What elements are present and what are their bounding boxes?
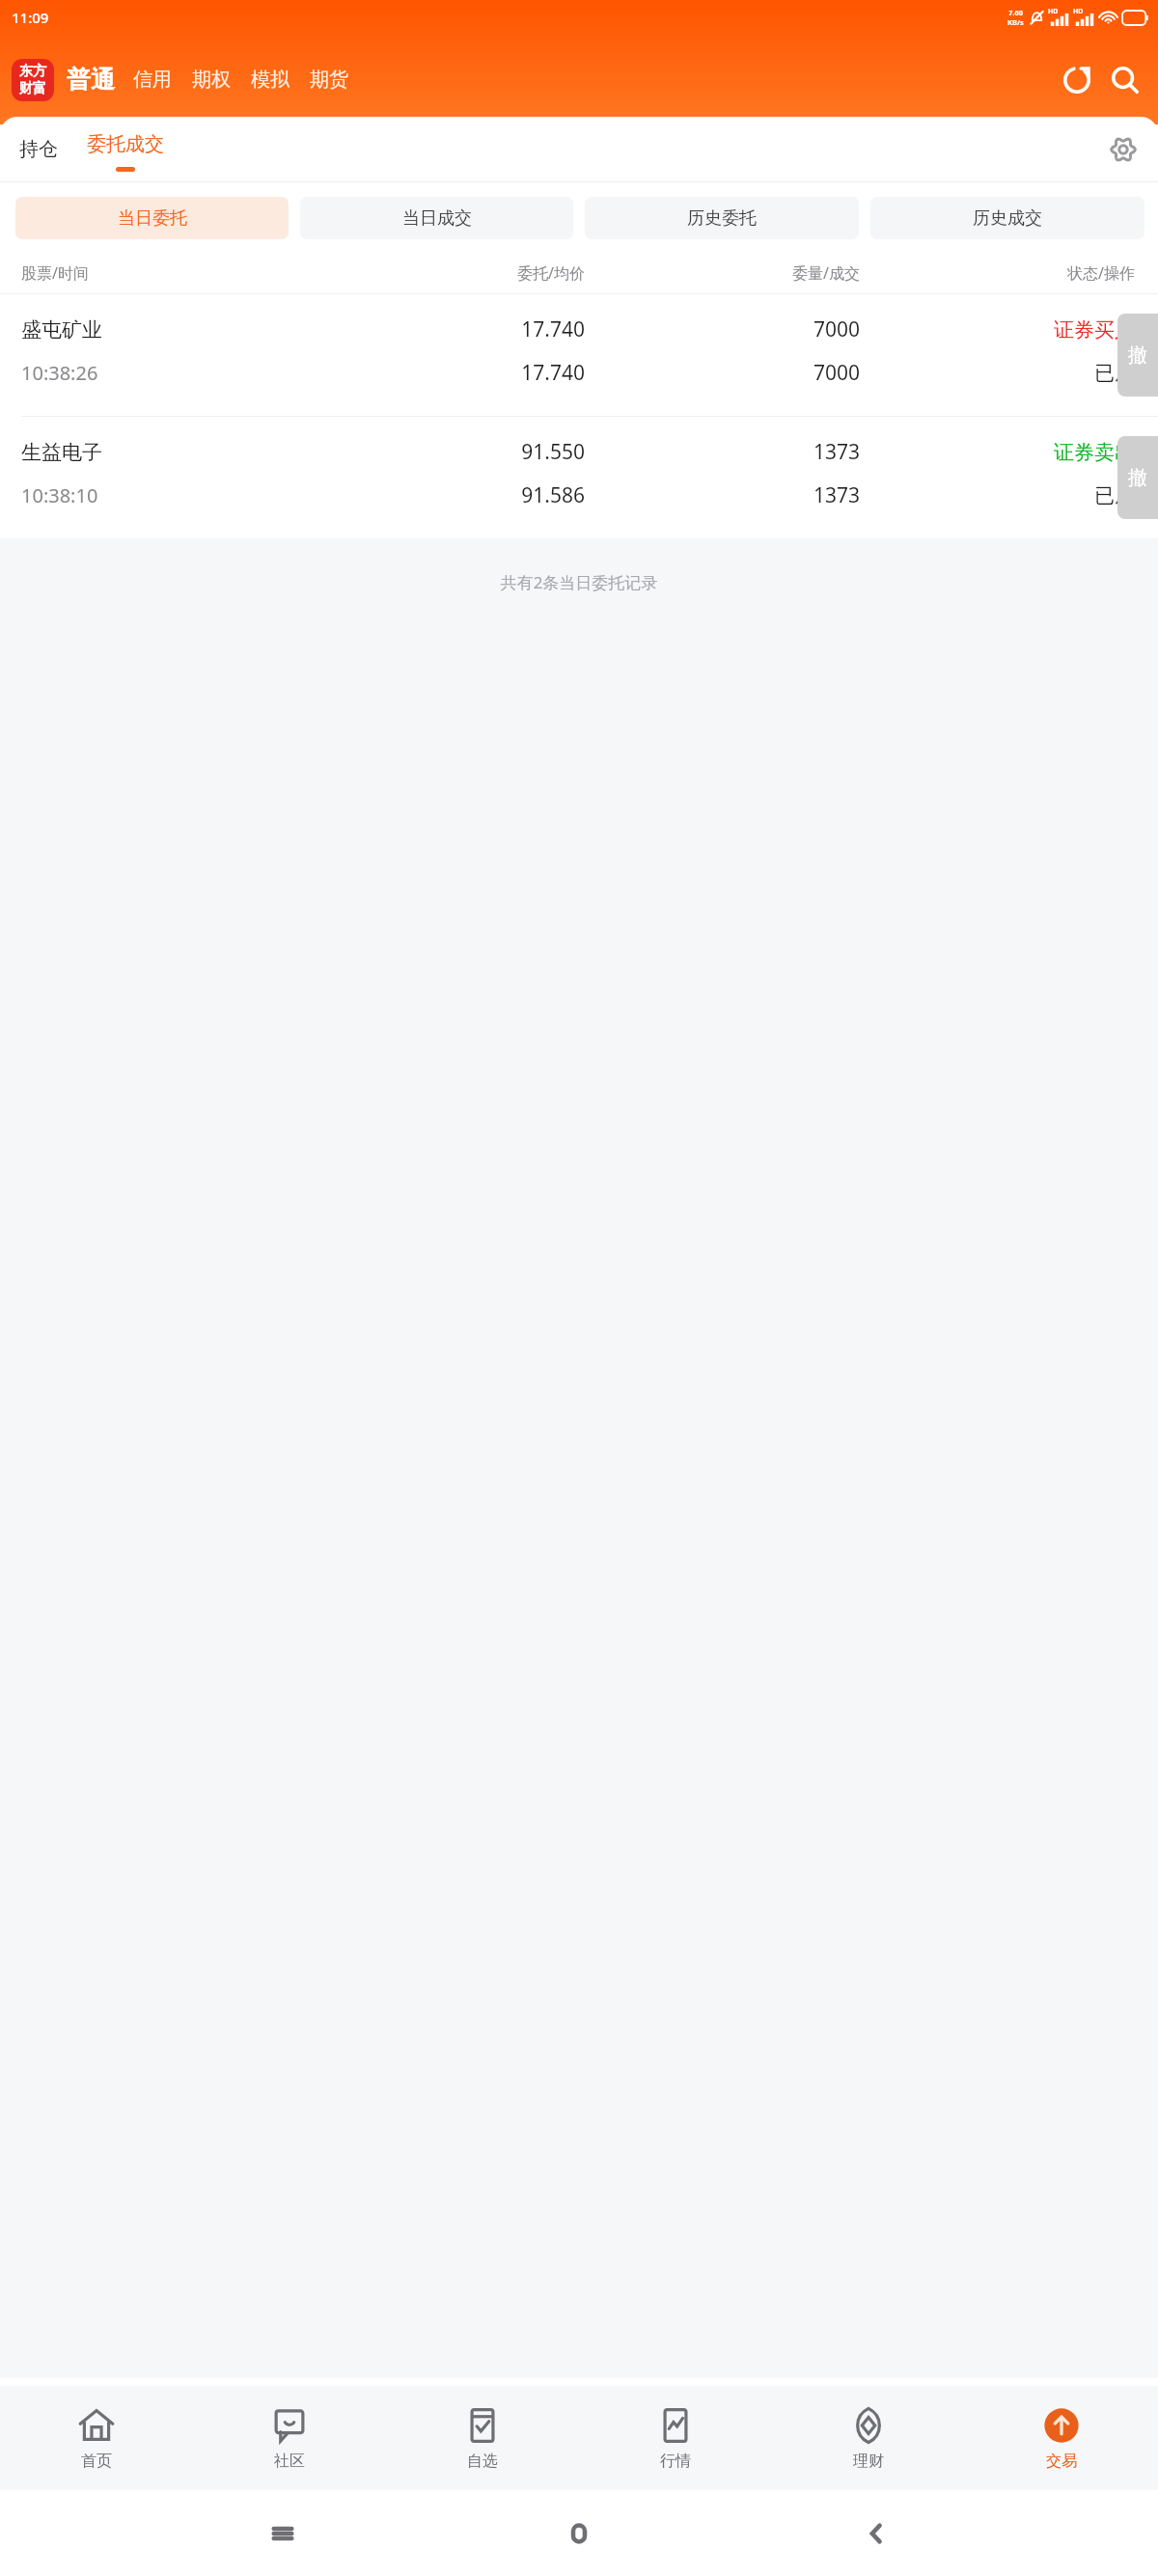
button[interactable]: 当日成交 [300,197,573,239]
staticText: HD [1048,7,1059,16]
staticText: KB/s [1007,17,1024,27]
staticText: 当日成交 [402,207,472,230]
staticText: 当日委托 [118,207,187,230]
button[interactable]: 历史委托 [585,197,859,239]
button[interactable]: 期货 [308,60,350,99]
staticText: 股票/时间 [21,262,310,284]
staticText: 17.740 [310,315,585,343]
button[interactable]: 持仓 [15,131,62,167]
staticText: 生益电子 [21,440,310,465]
staticText: 17.740 [310,359,585,387]
staticText: 7000 [585,359,860,387]
button[interactable]: 撤 [1117,314,1158,397]
staticText: 自选 [467,2452,498,2471]
button[interactable]: Refresh [1056,59,1098,101]
staticText: 委托成交 [87,132,164,156]
staticText: 委托/均价 [310,262,585,284]
button[interactable]: 生益电子 [0,417,1158,538]
staticText: 7.60 [1008,8,1023,17]
staticText: 1373 [585,438,860,466]
staticText: 行情 [660,2452,691,2471]
staticText: 撤 [1128,343,1147,368]
staticText: 委量/成交 [585,262,860,284]
staticText: 已成 [860,361,1135,386]
button[interactable]: 信用 [131,60,174,99]
button[interactable]: 委托成交 [83,126,168,172]
staticText: 7000 [585,315,860,343]
staticText: 持仓 [19,137,58,161]
staticText: 历史委托 [687,207,757,230]
staticText: 1373 [585,481,860,509]
staticText: 已成 [860,483,1135,508]
staticText: 共有2条当日委托记录 [0,571,1158,593]
staticText: 社区 [274,2452,305,2471]
staticText: HD [1073,7,1084,16]
button[interactable]: 历史成交 [870,197,1144,239]
staticText: 11:09 [12,8,49,27]
staticText: 期货 [310,68,348,92]
staticText: 撤 [1128,466,1147,490]
staticText: 东方 [19,63,46,80]
staticText: 91.586 [310,481,585,509]
staticText: 财富 [19,80,46,97]
staticText: 10:38:26 [21,360,310,386]
staticText: 期权 [192,68,231,92]
staticText: 历史成交 [973,207,1042,230]
button[interactable]: 交易 [965,2386,1158,2490]
button[interactable]: Settings [1102,128,1144,171]
staticText: 盛屯矿业 [21,317,310,343]
staticText: 证券买入 [860,317,1135,343]
button[interactable]: 模拟 [249,60,291,99]
staticText: 模拟 [251,68,289,92]
button[interactable]: 自选 [386,2386,579,2490]
button[interactable]: 社区 [193,2386,386,2490]
button[interactable]: 理财 [772,2386,965,2490]
button[interactable]: 行情 [579,2386,772,2490]
staticText: 普通 [67,65,115,95]
button[interactable]: 盛屯矿业 [0,294,1158,416]
staticText: 10:38:10 [21,482,310,508]
staticText: 证券卖出 [860,440,1135,465]
staticText: 信用 [133,68,172,92]
button[interactable]: 首页 [0,2386,193,2490]
staticText: 理财 [853,2452,884,2471]
staticText: 状态/操作 [860,262,1135,284]
button[interactable]: Search [1104,59,1146,101]
button[interactable]: 当日委托 [15,197,289,239]
button[interactable]: 期权 [190,60,233,99]
staticText: 交易 [1046,2452,1077,2471]
button[interactable]: East Money [12,59,54,101]
staticText: 91.550 [310,438,585,466]
staticText: 首页 [81,2452,112,2471]
button[interactable]: 撤 [1117,436,1158,519]
